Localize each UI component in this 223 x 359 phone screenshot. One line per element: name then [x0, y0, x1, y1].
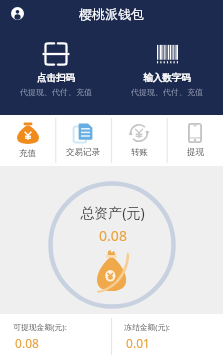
- staticText: 提现: [187, 147, 204, 158]
- staticText: 总资产(元): [80, 203, 145, 222]
- staticText: 0.01: [126, 335, 150, 351]
- staticText: 输入数字码: [143, 72, 191, 84]
- button[interactable]: 可提现金额(元):: [0, 314, 111, 359]
- staticText: 冻结金额(元):: [124, 322, 170, 333]
- staticText: 充值: [19, 148, 36, 159]
- staticText: 交易记录: [66, 147, 100, 158]
- button[interactable]: 充值: [0, 115, 55, 166]
- button[interactable]: 交易记录: [55, 115, 111, 166]
- button[interactable]: 输入数字码: [111, 42, 223, 97]
- button[interactable]: 转账: [111, 115, 167, 166]
- button[interactable]: 提现: [167, 115, 223, 166]
- staticText: 点击扫码: [37, 72, 75, 84]
- button[interactable]: Account: [11, 7, 24, 20]
- staticText: 樱桃派钱包: [79, 6, 144, 22]
- staticText: 0.08: [15, 335, 39, 351]
- staticText: 代提现、代付、充值: [131, 87, 203, 97]
- staticText: 转账: [131, 147, 148, 158]
- staticText: 0.08: [99, 226, 127, 245]
- staticText: 代提现、代付、充值: [20, 87, 92, 97]
- button[interactable]: 点击扫码: [0, 42, 111, 97]
- staticText: 可提现金额(元):: [13, 322, 67, 333]
- button[interactable]: 冻结金额(元):: [111, 314, 223, 359]
